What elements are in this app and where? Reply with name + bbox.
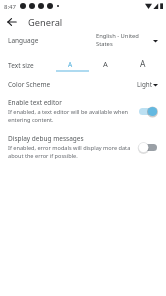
- staticText: Enable text editor: [8, 98, 62, 107]
- button[interactable]: A: [56, 56, 89, 72]
- button[interactable]: Back: [3, 13, 21, 31]
- staticText: Display debug messages: [8, 134, 84, 143]
- button[interactable]: A: [129, 56, 157, 72]
- button[interactable]: Display debug messages: [0, 134, 166, 164]
- staticText: English - United States: [96, 32, 143, 48]
- staticText: If enabled, error modals will display mo…: [8, 144, 132, 160]
- staticText: 8:47: [4, 3, 16, 11]
- button[interactable]: Language: [0, 31, 166, 49]
- staticText: Text size: [8, 61, 34, 70]
- button[interactable]: A: [91, 56, 119, 72]
- staticText: A: [140, 58, 146, 70]
- staticText: A: [68, 60, 73, 69]
- staticText: Language: [8, 36, 39, 45]
- button[interactable]: Color Scheme: [0, 76, 166, 93]
- staticText: General: [28, 16, 63, 29]
- staticText: If enabled, a text editor will be availa…: [8, 108, 132, 124]
- staticText: Light: [137, 80, 152, 89]
- staticText: Color Scheme: [8, 80, 51, 89]
- staticText: A: [103, 59, 108, 69]
- button[interactable]: Enable text editor: [0, 98, 166, 128]
